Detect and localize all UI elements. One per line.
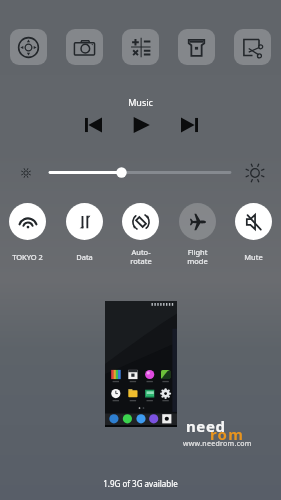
button[interactable]: Flashlight bbox=[178, 29, 215, 65]
button[interactable]: Mute bbox=[230, 203, 277, 273]
button[interactable]: Calculator bbox=[122, 29, 159, 65]
button[interactable]: Camera bbox=[66, 29, 103, 65]
staticText: rom bbox=[210, 424, 245, 444]
button[interactable]: Raise brightness bbox=[246, 164, 264, 182]
staticText: Auto- rotate bbox=[130, 247, 152, 266]
button[interactable]: Lower brightness bbox=[19, 166, 33, 180]
button[interactable]: Next bbox=[178, 114, 200, 136]
button[interactable]: Play bbox=[130, 114, 152, 136]
button[interactable]: Auto- rotate bbox=[117, 203, 164, 273]
button[interactable]: Screenshot bbox=[234, 29, 271, 65]
button[interactable]: TOKYO 2 bbox=[4, 203, 51, 273]
button[interactable]: Flight mode bbox=[174, 203, 221, 273]
staticText: www.needrom.com bbox=[183, 439, 252, 449]
button[interactable]: Previous bbox=[82, 114, 104, 136]
staticText: Data bbox=[76, 252, 93, 262]
staticText: Mute bbox=[244, 252, 263, 262]
staticText: Music bbox=[0, 96, 281, 108]
button[interactable]: Screenshot preview bbox=[105, 301, 177, 427]
staticText: 1.9G of 3G available bbox=[0, 478, 281, 489]
staticText: Flight mode bbox=[187, 247, 208, 266]
button[interactable]: Data bbox=[61, 203, 108, 273]
staticText: need bbox=[186, 416, 226, 436]
staticText: TOKYO 2 bbox=[12, 252, 43, 262]
button[interactable]: Screen recorder bbox=[10, 29, 47, 65]
